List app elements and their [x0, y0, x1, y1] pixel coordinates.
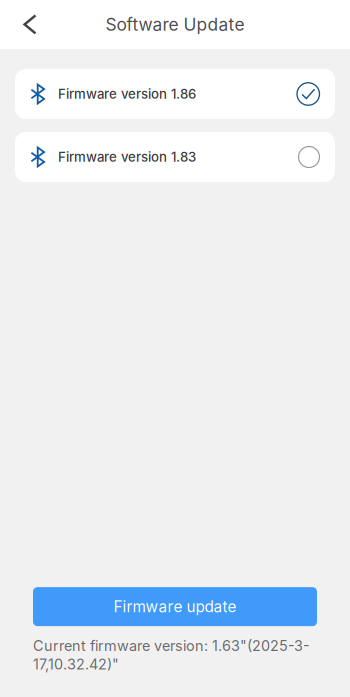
staticText: Current firmware version: 1.63"(2025-3-: [33, 637, 310, 655]
button[interactable]: Firmware version 1.83: [15, 132, 335, 182]
button[interactable]: Back: [0, 1, 51, 48]
staticText: Firmware version 1.86: [58, 86, 196, 102]
staticText: Firmware version 1.83: [58, 149, 196, 165]
staticText: Firmware update: [113, 597, 236, 616]
button[interactable]: Firmware update: [33, 587, 317, 626]
staticText: 17,10.32.42)": [33, 656, 119, 673]
staticText: Software Update: [105, 14, 244, 35]
button[interactable]: Firmware version 1.86: [15, 69, 335, 119]
